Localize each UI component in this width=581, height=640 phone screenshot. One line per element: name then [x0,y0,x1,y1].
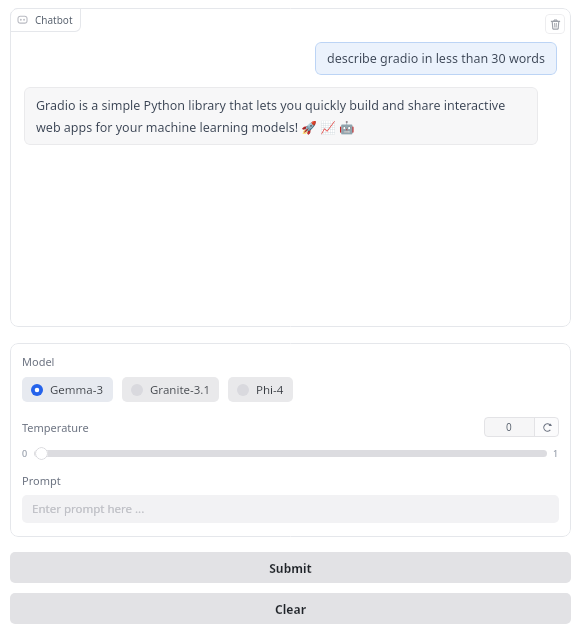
button[interactable]: Enter prompt here ... [22,495,559,523]
staticText: Clear [275,601,306,617]
button[interactable]: Submit [10,552,571,583]
button[interactable]: Clear [10,593,571,624]
staticText: Granite-3.1 [150,382,210,398]
staticText: 0 [22,447,28,459]
staticText: describe gradio in less than 30 words [327,50,545,67]
staticText: Enter prompt here ... [32,501,145,517]
staticText: 0 [506,420,512,434]
button[interactable]: Temperature slider [35,447,48,460]
button[interactable]: Gemma-3 [22,377,113,402]
other: Reset [535,417,559,437]
button[interactable]: Granite-3.1 [122,377,219,402]
staticText: Model [22,354,55,369]
staticText: 1 [553,447,559,459]
staticText: Temperature [22,420,89,435]
staticText: Gemma-3 [50,382,104,398]
button[interactable]: Phi-4 [228,377,293,402]
staticText: Chatbot [35,13,73,27]
button[interactable]: Chatbot [10,8,81,32]
staticText: Prompt [22,473,61,488]
staticText: Submit [269,560,312,576]
button[interactable]: Clear chat [545,14,565,34]
button[interactable]: 0 [484,417,559,437]
staticText: Gradio is a simple Python library that l… [36,97,526,135]
staticText: Phi-4 [256,382,284,398]
